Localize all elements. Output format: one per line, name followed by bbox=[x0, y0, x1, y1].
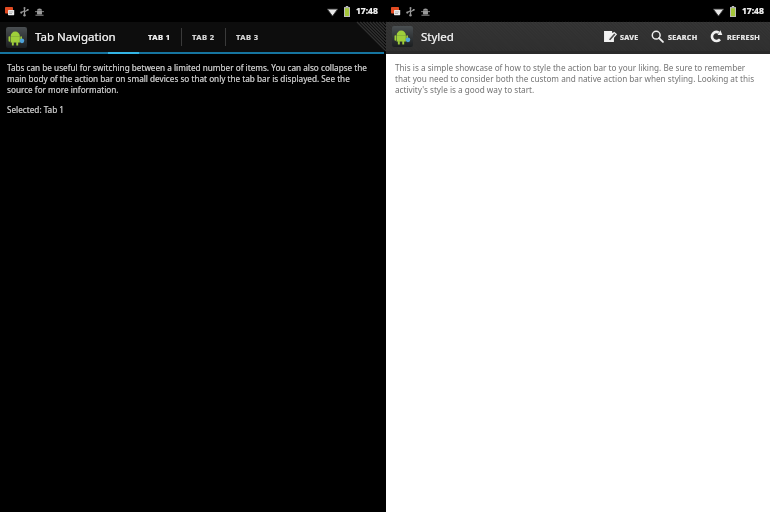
staticText: SEARCH bbox=[668, 32, 698, 42]
button[interactable]: TAB 2 bbox=[182, 22, 225, 52]
button[interactable]: Save bbox=[597, 22, 645, 51]
staticText: TAB 2 bbox=[192, 32, 215, 42]
staticText: This is a simple showcase of how to styl… bbox=[395, 62, 761, 95]
other: Search bbox=[651, 30, 664, 43]
button[interactable]: Search bbox=[645, 22, 704, 51]
other: Save bbox=[603, 30, 616, 43]
other: Refresh bbox=[710, 30, 723, 43]
staticText: Tab Navigation bbox=[35, 29, 116, 45]
button[interactable]: TAB 3 bbox=[226, 22, 269, 52]
staticText: TAB 1 bbox=[148, 32, 171, 42]
staticText: TAB 3 bbox=[236, 32, 259, 42]
staticText: Styled bbox=[421, 29, 454, 45]
button[interactable]: TAB 1 bbox=[138, 22, 181, 52]
staticText: 17:48 bbox=[356, 5, 378, 17]
button[interactable]: Refresh bbox=[704, 22, 766, 51]
staticText: 17:48 bbox=[742, 5, 764, 17]
staticText: Tabs can be useful for switching between… bbox=[7, 62, 377, 95]
staticText: Selected: Tab 1 bbox=[7, 104, 65, 115]
staticText: SAVE bbox=[620, 32, 639, 42]
staticText: REFRESH bbox=[727, 32, 760, 42]
